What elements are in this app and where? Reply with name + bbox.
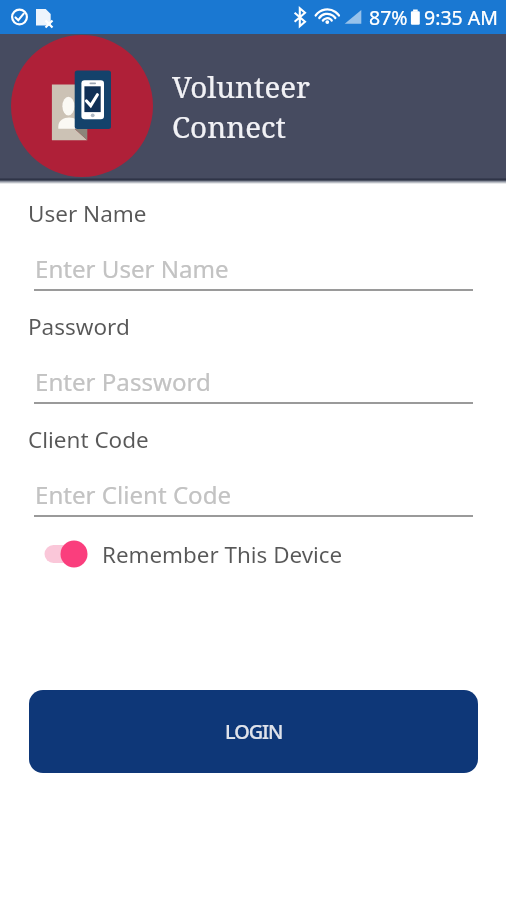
- button[interactable]: Enter Password: [35, 365, 211, 398]
- staticText: Volunteer Connect: [172, 66, 310, 147]
- staticText: User Name: [28, 198, 147, 229]
- staticText: Enter User Name: [35, 252, 229, 285]
- button[interactable]: Password: [28, 311, 130, 342]
- staticText: Remember This Device: [102, 539, 343, 570]
- staticText: Enter Password: [35, 365, 211, 398]
- button[interactable]: Client Code: [28, 424, 149, 455]
- staticText: LOGIN: [225, 718, 283, 745]
- staticText: Client Code: [28, 424, 149, 455]
- staticText: 87%: [369, 4, 408, 31]
- button[interactable]: Remember This Device: [31, 535, 343, 573]
- button[interactable]: LOGIN: [29, 690, 478, 773]
- staticText: 9:35 AM: [424, 4, 498, 31]
- button[interactable]: User Name: [28, 198, 147, 229]
- staticText: Password: [28, 311, 130, 342]
- button[interactable]: Enter User Name: [35, 252, 229, 285]
- button[interactable]: Enter Client Code: [35, 478, 232, 511]
- staticText: Enter Client Code: [35, 478, 232, 511]
